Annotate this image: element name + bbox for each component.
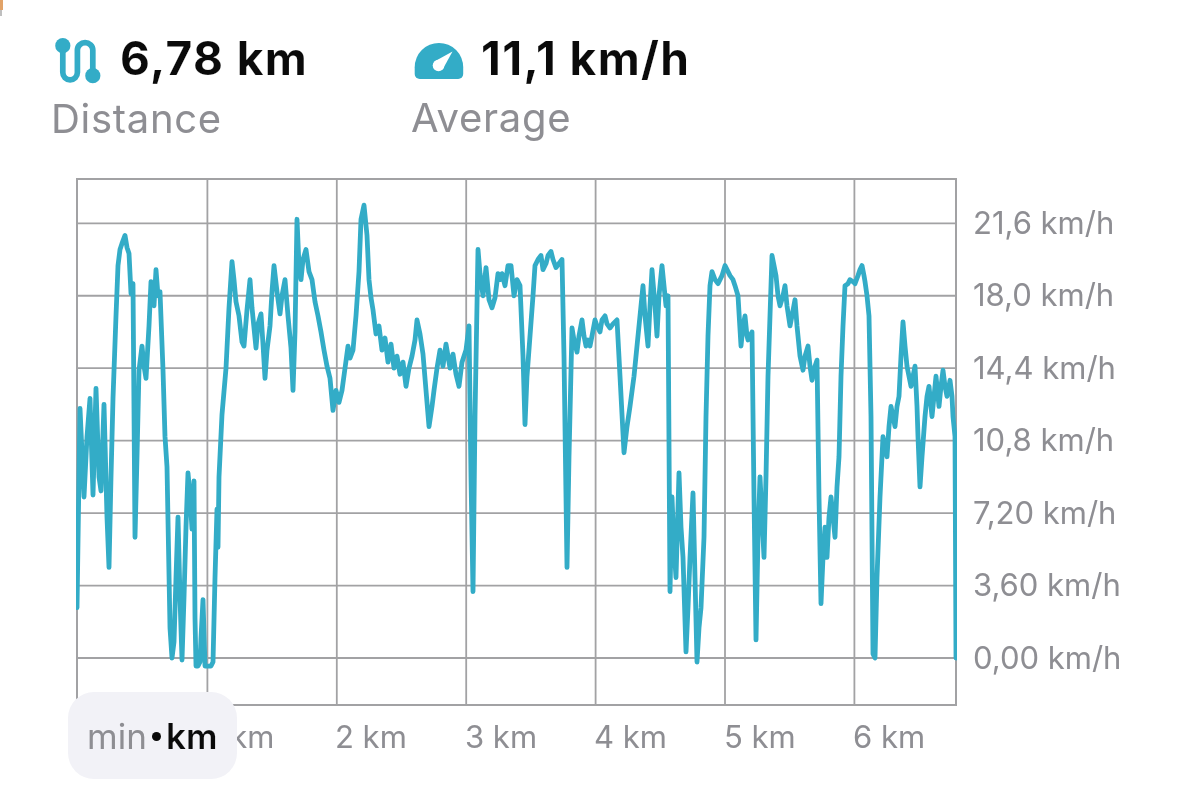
staticText: 21,6 km/h [973,204,1115,242]
staticText: 7,20 km/h [973,494,1117,532]
staticText: 5 km [724,718,796,756]
staticText: km [166,715,218,757]
staticText: 11,1 km/h [481,30,691,86]
button[interactable]: min [68,692,237,779]
staticText: Average [411,93,572,141]
staticText: 0,00 km/h [973,639,1122,677]
staticText: 10,8 km/h [973,421,1115,459]
staticText: 14,4 km/h [973,349,1116,387]
staticText: min [87,715,147,757]
staticText: 6 km [853,718,926,756]
staticText: 3 km [465,718,538,756]
staticText: Distance [51,94,222,142]
staticText: 3,60 km/h [973,566,1121,604]
staticText: 2 km [335,718,407,756]
staticText: 4 km [594,718,667,756]
staticText: 18,0 km/h [973,276,1115,314]
staticText: 1 km [209,718,275,756]
staticText: 6,78 km [120,30,309,86]
